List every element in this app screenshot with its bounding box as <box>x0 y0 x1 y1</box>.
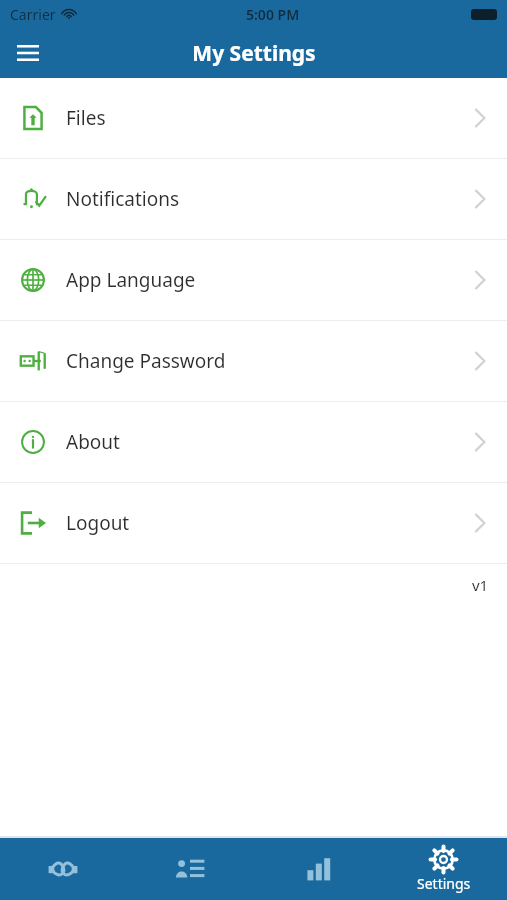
staticText: Files <box>66 105 106 131</box>
button[interactable]: Menu <box>8 33 48 73</box>
staticText: App Language <box>66 267 196 293</box>
staticText: About <box>66 429 120 455</box>
button[interactable]: App Language <box>0 240 507 320</box>
staticText: Logout <box>66 510 130 536</box>
button[interactable]: Change Password <box>0 321 507 401</box>
button[interactable]: Deals <box>0 838 126 900</box>
staticText: Settings <box>417 874 471 893</box>
staticText: 5:00 PM <box>246 5 300 24</box>
staticText: Carrier <box>10 5 56 24</box>
staticText: v1 <box>472 575 489 595</box>
button[interactable]: About <box>0 402 507 482</box>
button[interactable]: Contacts <box>126 838 253 900</box>
button[interactable]: Settings <box>380 838 507 900</box>
button[interactable]: Notifications <box>0 159 507 239</box>
button[interactable]: Reports <box>253 838 380 900</box>
button[interactable]: Files <box>0 78 507 158</box>
button[interactable]: Logout <box>0 483 507 563</box>
staticText: My Settings <box>192 39 316 68</box>
staticText: Change Password <box>66 348 226 374</box>
staticText: Notifications <box>66 186 180 212</box>
